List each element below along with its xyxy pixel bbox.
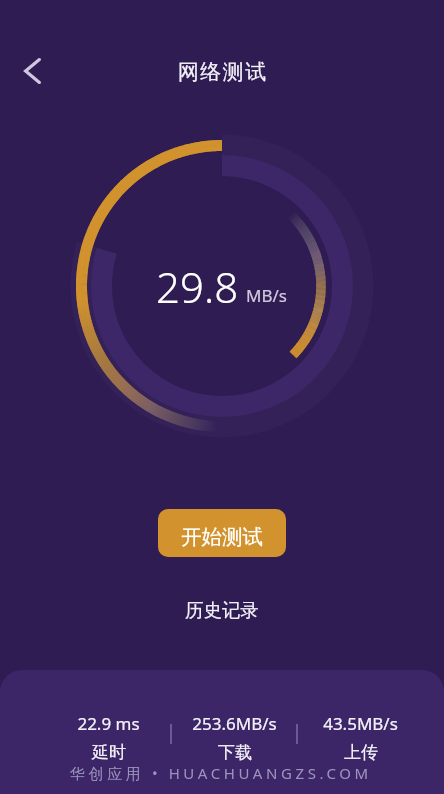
staticText: 下载: [218, 742, 252, 763]
staticText: 22.9 ms: [77, 712, 140, 735]
button[interactable]: 253.6MB/s: [174, 712, 294, 763]
staticText: 延时: [92, 742, 126, 763]
staticText: 历史记录: [185, 599, 259, 622]
staticText: 253.6MB/s: [192, 712, 277, 735]
staticText: 29.8: [156, 258, 239, 315]
button[interactable]: 43.5MB/s: [300, 712, 420, 763]
button[interactable]: Back: [8, 47, 56, 95]
button[interactable]: 开始测试: [158, 509, 286, 557]
button[interactable]: 历史记录: [171, 591, 273, 630]
staticText: MB/s: [246, 284, 287, 307]
staticText: 上传: [344, 742, 378, 763]
staticText: 华创应用 • HUACHUANGZS.COM: [70, 763, 372, 783]
button[interactable]: 22.9 ms: [48, 712, 168, 763]
staticText: 开始测试: [181, 524, 263, 550]
staticText: 网络测试: [177, 59, 267, 85]
staticText: 43.5MB/s: [323, 712, 398, 735]
